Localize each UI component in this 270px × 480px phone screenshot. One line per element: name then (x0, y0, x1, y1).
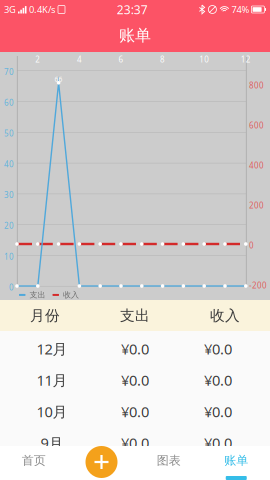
staticText: 60 (4, 97, 14, 108)
button[interactable]: 9月 (0, 427, 270, 459)
staticText: 10 (4, 251, 14, 262)
staticText: 0 (249, 240, 254, 251)
staticText: 6 (118, 54, 123, 65)
staticText: 23:37 (117, 1, 148, 17)
staticText: 10 (199, 54, 209, 65)
button[interactable]: 10月 (0, 396, 270, 427)
staticText: 800 (249, 80, 264, 91)
staticText: 11月 (36, 370, 67, 390)
staticText: 收入 (63, 290, 79, 300)
button[interactable]: Add (85, 446, 117, 478)
staticText: 600 (249, 120, 264, 131)
button[interactable]: 12月 (0, 333, 270, 364)
staticText: ¥0.0 (121, 402, 149, 421)
staticText: 12 (241, 54, 251, 65)
staticText: 40 (4, 159, 14, 169)
button[interactable]: 首页 (0, 446, 67, 480)
staticText: 收入 (210, 306, 240, 324)
staticText: 66 (55, 75, 63, 84)
staticText: ¥0.0 (204, 370, 232, 390)
staticText: ¥0.0 (121, 339, 149, 358)
staticText: 8 (160, 54, 165, 65)
staticText: 月份 (30, 306, 60, 324)
button[interactable]: 图表 (135, 446, 202, 480)
staticText: 支出 (29, 290, 45, 300)
staticText: ¥0.0 (121, 370, 149, 390)
staticText: ¥0.0 (204, 402, 232, 421)
staticText: 支出 (120, 306, 150, 324)
staticText: ¥0.0 (121, 433, 149, 453)
staticText: 账单 (119, 26, 151, 45)
staticText: 图表 (157, 453, 181, 468)
staticText: 20 (4, 220, 14, 231)
staticText: ¥0.0 (204, 339, 232, 358)
staticText: 3G (4, 3, 16, 16)
staticText: 9月 (40, 433, 63, 453)
staticText: -200 (249, 280, 267, 291)
staticText: 50 (4, 128, 14, 139)
staticText: 400 (249, 160, 264, 171)
button[interactable]: 账单 (202, 446, 270, 480)
staticText: 70 (4, 66, 14, 77)
button[interactable] (67, 446, 135, 480)
staticText: 首页 (22, 453, 46, 468)
button[interactable]: 11月 (0, 364, 270, 396)
staticText: 74% (231, 3, 249, 16)
staticText: ¥0.0 (204, 433, 232, 453)
staticText: 0 (9, 282, 14, 293)
staticText: 30 (4, 190, 14, 200)
staticText: 账单 (224, 453, 248, 468)
staticText: 2 (35, 54, 40, 65)
staticText: 4 (77, 54, 82, 65)
staticText: 10月 (36, 402, 67, 421)
staticText: 0.4K/s (29, 3, 55, 16)
staticText: 12月 (36, 339, 67, 358)
staticText: 200 (249, 200, 264, 211)
